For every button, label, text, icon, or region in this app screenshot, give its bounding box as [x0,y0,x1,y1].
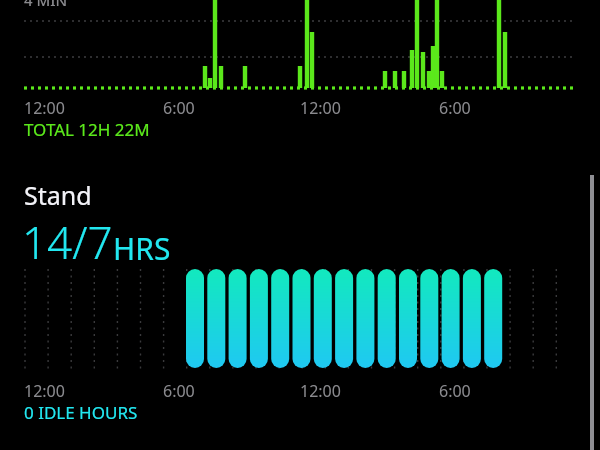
button[interactable]: Exercise minutes chart [0,0,600,95]
staticText: TOTAL 12H 22M [24,118,150,141]
staticText: 12:00 [300,97,341,119]
staticText: Stand [24,178,92,212]
button[interactable]: Stand hours chart [0,262,600,374]
button[interactable]: Stand [0,178,600,272]
staticText: HRS [113,228,171,269]
staticText: 6:00 [163,380,195,402]
staticText: 6:00 [163,97,195,119]
staticText: 0 IDLE HOURS [24,401,138,424]
staticText: 12:00 [24,97,65,119]
staticText: 4 MIN [24,0,68,10]
staticText: 6:00 [439,97,471,119]
staticText: 6:00 [439,380,471,402]
staticText: 12:00 [24,380,65,402]
staticText: 12:00 [300,380,341,402]
staticText: 14/7 [22,212,113,272]
